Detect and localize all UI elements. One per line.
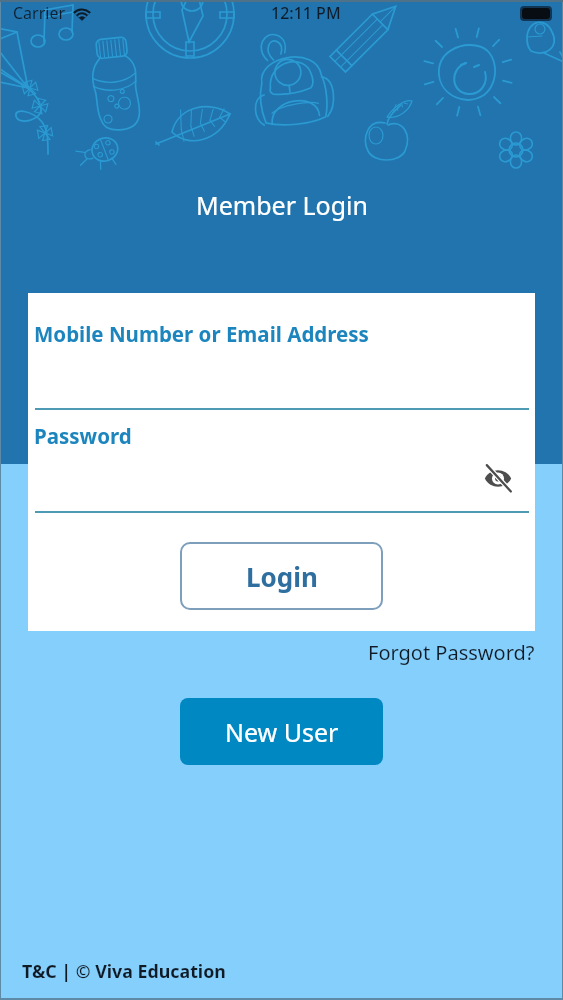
- button[interactable]: T&C | © Viva Education: [22, 959, 226, 983]
- button[interactable]: Forgot Password?: [368, 639, 535, 666]
- staticText: Member Login: [196, 188, 368, 222]
- button[interactable]: Show password: [480, 460, 516, 496]
- staticText: Password: [34, 422, 132, 450]
- staticText: Forgot Password?: [368, 639, 535, 666]
- staticText: 12:11 PM: [271, 2, 341, 24]
- staticText: New User: [225, 715, 339, 749]
- button[interactable]: Login: [180, 542, 383, 610]
- staticText: Mobile Number or Email Address: [34, 320, 369, 348]
- staticText: Carrier: [13, 2, 66, 24]
- button[interactable]: New User: [180, 698, 383, 765]
- staticText: Login: [246, 559, 318, 594]
